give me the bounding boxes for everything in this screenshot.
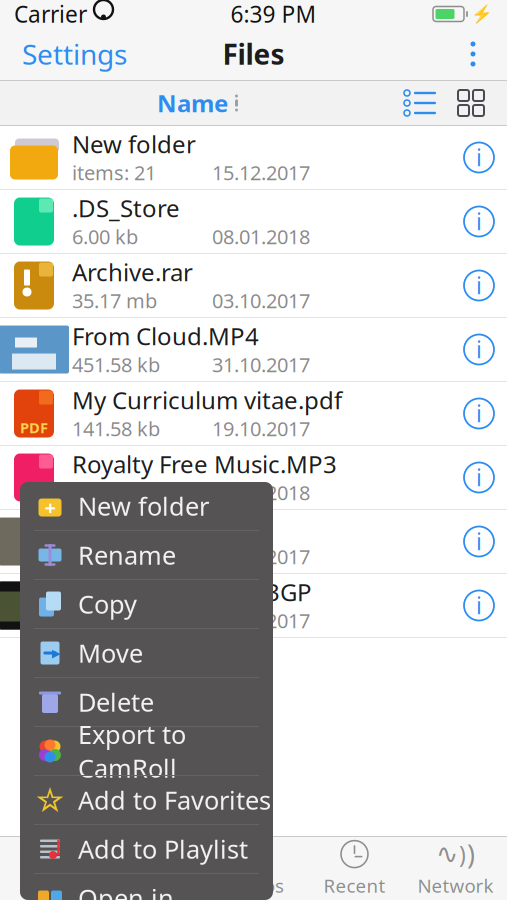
staticText: 19.10.2017 (212, 415, 310, 442)
staticText: New folder (72, 128, 196, 160)
staticText: 04.08.2017 (212, 607, 310, 634)
button[interactable]: Open in (20, 874, 273, 900)
button[interactable]: ▶ (20, 629, 273, 677)
button[interactable]: Copy (20, 580, 273, 628)
button[interactable]: Dropbox (102, 837, 203, 900)
staticText: i (476, 270, 482, 300)
staticText: 03.10.2017 (212, 287, 310, 314)
staticText: 6:39 PM (230, 0, 316, 29)
staticText: i (476, 142, 482, 172)
button[interactable]: Local (1, 837, 102, 900)
staticText: i (476, 206, 482, 236)
button[interactable]: More options (451, 28, 495, 80)
button[interactable]: + (20, 482, 273, 530)
staticText: New folder (78, 489, 209, 523)
button[interactable]: Rename (20, 531, 273, 579)
staticText: ⚡ (471, 4, 493, 24)
button[interactable]: Info (451, 126, 507, 189)
staticText: 15.12.2017 (212, 159, 310, 186)
button[interactable]: Info (451, 510, 507, 573)
button[interactable]: New folder (0, 126, 507, 190)
staticText: 451.58 kb (72, 351, 160, 378)
button[interactable]: Archive.rar (0, 254, 507, 318)
staticText: i (476, 334, 482, 364)
staticText: Delete (78, 685, 154, 719)
staticText: Dropbox (115, 873, 190, 898)
button[interactable]: PDF (0, 382, 507, 446)
button[interactable]: Info (451, 190, 507, 253)
button[interactable]: ★ (20, 776, 273, 824)
button[interactable]: Name (143, 81, 252, 125)
button[interactable] (0, 510, 507, 574)
staticText: i (476, 398, 482, 428)
button[interactable]: Info (451, 254, 507, 317)
staticText: Move (78, 636, 143, 670)
staticText: 31.10.2017 (212, 351, 310, 378)
staticText: 08.01.2018 (212, 479, 310, 506)
staticText: Files (222, 35, 284, 73)
staticText: ) (467, 836, 475, 872)
staticText: i (476, 462, 482, 492)
staticText: 20170804_30mb.3GP (72, 576, 312, 608)
button[interactable]: .DS_Store (0, 190, 507, 254)
staticText: 04.08.2017 (212, 543, 310, 570)
staticText: PDF (20, 418, 48, 437)
staticText: Local (29, 873, 74, 898)
staticText: 6.00 kb (72, 223, 138, 250)
staticText: Name (157, 87, 228, 119)
staticText: Network (417, 873, 493, 898)
button[interactable]: Settings (0, 28, 149, 80)
staticText: From Cloud.MP4 (72, 320, 259, 352)
button[interactable]: Grid view (445, 81, 497, 125)
staticText: ★ (41, 789, 59, 811)
staticText: Add to Playlist (78, 832, 248, 866)
staticText: .DS_Store (72, 192, 180, 224)
button[interactable]: 20170804_30mb.3GP (0, 574, 507, 638)
button[interactable]: From Cloud.MP4 (0, 318, 507, 382)
staticText: ★ (34, 780, 65, 820)
staticText: Open in (78, 881, 174, 900)
button[interactable]: Info (451, 574, 507, 637)
staticText: Carrier (14, 0, 87, 29)
button[interactable]: List view (395, 81, 445, 125)
staticText: Copy (78, 587, 137, 621)
button[interactable]: Info (451, 382, 507, 445)
button[interactable]: Photos (203, 837, 304, 900)
staticText: My Curriculum vitae.pdf (72, 384, 342, 416)
staticText: Recent (323, 873, 385, 898)
staticText: Archive.rar (72, 256, 193, 288)
staticText: ▶ (51, 646, 60, 660)
staticText: i (476, 590, 482, 620)
staticText: 08.01.2018 (212, 223, 310, 250)
staticText: items: 21 (72, 159, 156, 186)
staticText: 35.17 mb (72, 287, 157, 314)
staticText: + (44, 494, 55, 521)
button[interactable]: Info (451, 446, 507, 509)
button[interactable]: Royalty Free Music.MP3 (0, 446, 507, 510)
button[interactable]: Info (451, 318, 507, 381)
staticText: 141.58 kb (72, 415, 160, 442)
staticText: ) (459, 839, 466, 869)
button[interactable]: ∿ (405, 837, 506, 900)
button[interactable]: Add to Playlist (20, 825, 273, 873)
staticText: Rename (78, 538, 176, 572)
staticText: i (476, 526, 482, 556)
staticText: Settings (22, 35, 127, 73)
staticText: Add to Favorites (78, 783, 271, 817)
staticText: Photos (223, 873, 284, 898)
staticText: Royalty Free Music.MP3 (72, 448, 337, 480)
button[interactable]: Delete (20, 678, 273, 726)
staticText: ∿ (436, 839, 458, 869)
staticText: Export to CamRoll (78, 717, 186, 785)
button[interactable]: Export to CamRoll (20, 727, 273, 775)
button[interactable]: Recent (304, 837, 405, 900)
